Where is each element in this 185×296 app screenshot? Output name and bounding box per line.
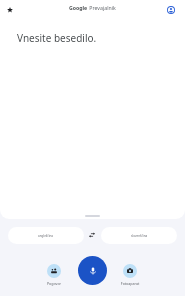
staticText: Prevajalnik [88,4,116,11]
staticText: Fotoaparat [108,281,152,286]
button[interactable]: slovenščina [101,227,177,244]
staticText: Vnesite besedilo. [17,31,97,45]
staticText: Pogovor [32,281,76,286]
staticText: angleščina [38,234,54,238]
staticText: Google [69,4,88,11]
button[interactable]: angleščina [8,227,84,244]
staticText: slovenščina [131,234,148,238]
button[interactable]: Swap languages [83,226,101,244]
button[interactable]: Camera [108,264,152,286]
button[interactable]: Account [163,2,179,18]
button[interactable]: Conversation [32,264,76,286]
button[interactable]: Saved [2,2,18,18]
button[interactable]: Microphone [78,256,107,285]
